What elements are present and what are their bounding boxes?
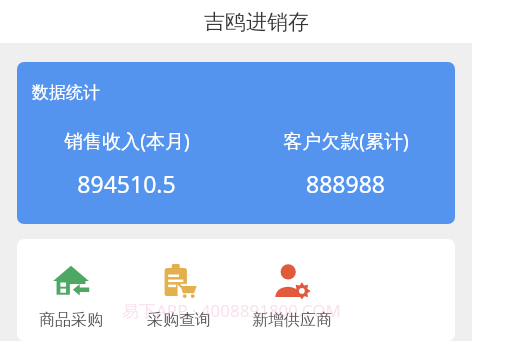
button[interactable]: 商品采购 — [17, 261, 125, 330]
staticText: 新增供应商 — [252, 310, 332, 330]
staticText: 采购查询 — [147, 310, 211, 330]
staticText: 商品采购 — [39, 310, 103, 330]
staticText: 888988 — [306, 168, 385, 199]
button[interactable]: 新增供应商 — [233, 261, 351, 330]
staticText: 数据统计 — [32, 82, 100, 103]
staticText: 客户欠款(累计) — [283, 128, 409, 154]
button[interactable]: 采购查询 — [125, 261, 233, 330]
button[interactable]: 数据统计 — [17, 62, 455, 224]
staticText: 吉鸥进销存 — [204, 9, 309, 35]
staticText: 易下APP · 4008891800.COM — [122, 299, 341, 322]
staticText: 894510.5 — [77, 168, 176, 199]
staticText: 销售收入(本月) — [64, 128, 190, 154]
